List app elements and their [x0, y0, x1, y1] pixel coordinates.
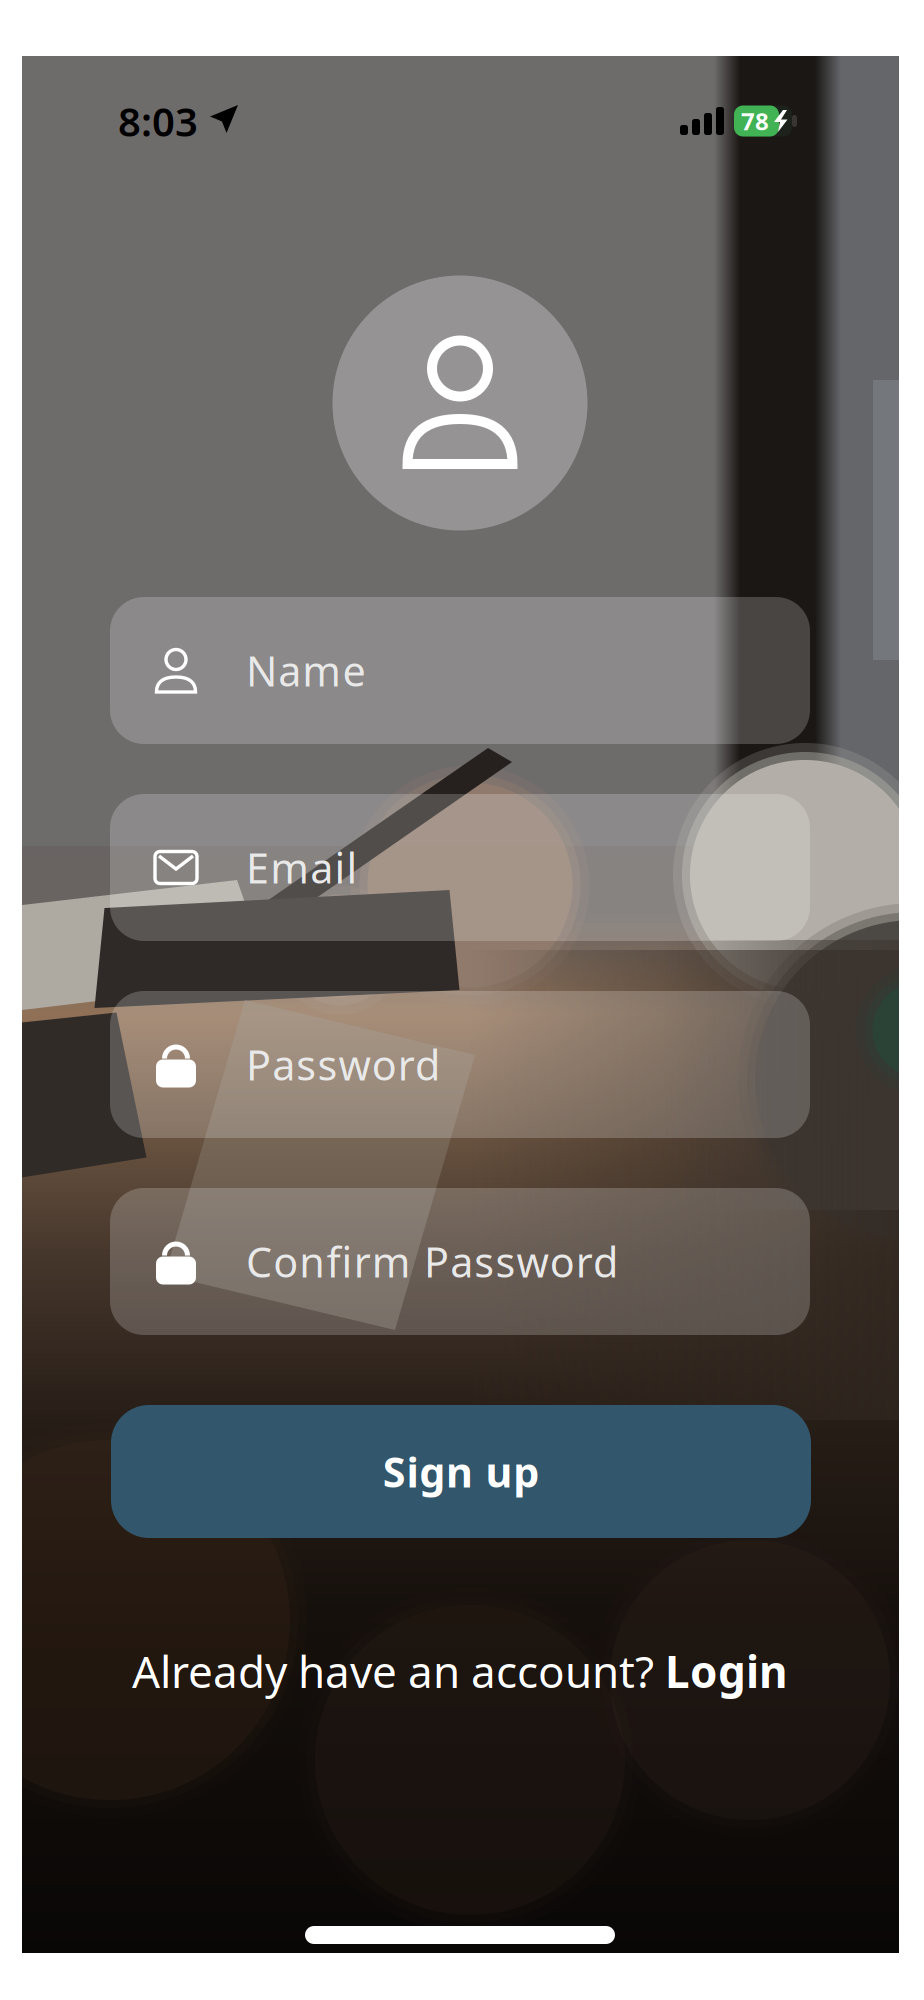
staticText: Already have an account? [132, 1642, 654, 1700]
button[interactable]: Sign up [111, 1405, 811, 1538]
staticText: Sign up [383, 1444, 539, 1499]
button[interactable]: Name [110, 597, 810, 744]
staticText: Password [246, 1037, 440, 1092]
staticText: Name [246, 643, 365, 698]
staticText: 78 [741, 105, 769, 137]
staticText: Confirm Password [246, 1234, 618, 1289]
button[interactable]: Password [110, 991, 810, 1138]
button[interactable]: Email [110, 794, 810, 941]
staticText: 8:03 [118, 94, 198, 147]
staticText: Login [665, 1642, 788, 1700]
button[interactable]: Confirm Password [110, 1188, 810, 1335]
button[interactable]: Login [665, 1642, 788, 1700]
staticText: Email [246, 840, 357, 895]
